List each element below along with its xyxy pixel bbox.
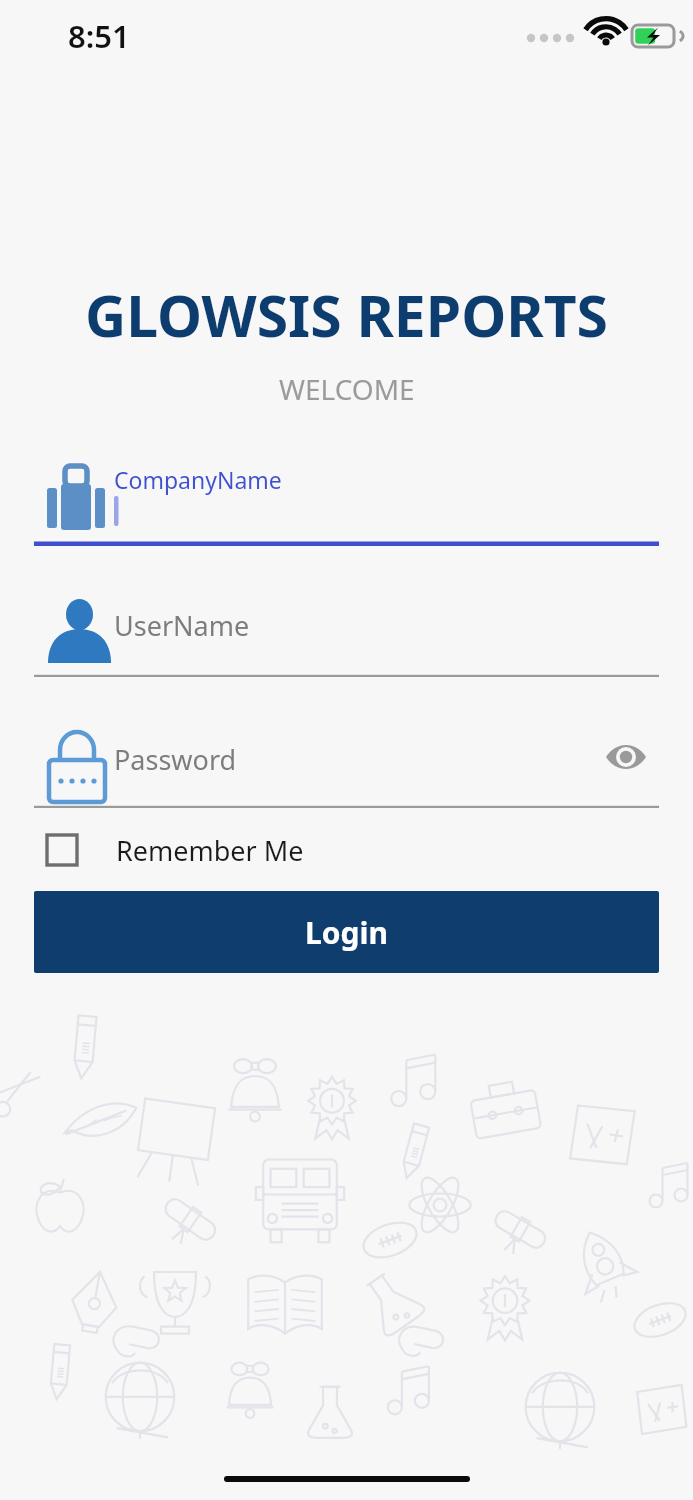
button[interactable]: Remember Me	[34, 820, 304, 880]
staticText: Login	[305, 912, 388, 953]
staticText: UserName	[114, 607, 250, 644]
staticText: GLOWSIS REPORTS	[85, 276, 608, 354]
button[interactable]: UserName	[34, 585, 659, 677]
staticText: CompanyName	[114, 464, 282, 495]
button[interactable]: CompanyName	[34, 452, 659, 546]
staticText: 8:51	[68, 15, 130, 57]
button[interactable]: Login	[34, 891, 659, 973]
button[interactable]: Show password	[594, 725, 658, 789]
staticText: WELCOME	[279, 370, 415, 408]
staticText: Remember Me	[116, 832, 304, 869]
button[interactable]: Password	[34, 718, 659, 808]
staticText: Password	[114, 741, 237, 778]
